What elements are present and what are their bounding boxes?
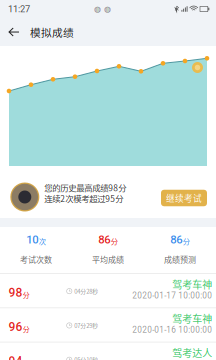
staticText: 04分28秒 — [74, 287, 98, 295]
staticText: 10 — [26, 233, 38, 246]
staticText: 次 — [39, 236, 46, 246]
staticText: 分 — [23, 290, 30, 300]
staticText: 驾考车神 — [172, 277, 212, 291]
staticText: 05分10秒 — [74, 355, 98, 360]
staticText: 07分29秒 — [74, 321, 98, 330]
button[interactable]: Back — [0, 18, 30, 46]
staticText: ◍ ◍ — [94, 4, 111, 14]
staticText: 86 — [170, 233, 182, 246]
button[interactable]: 继续考试 — [161, 190, 207, 206]
staticText: 2020-01-17 10:00:00 — [132, 291, 212, 300]
staticText: 98 — [8, 286, 22, 300]
staticText: 分 — [183, 236, 190, 246]
staticText: 平均成绩 — [92, 253, 124, 265]
staticText: 考试次数 — [20, 253, 52, 265]
staticText: 94 — [8, 354, 22, 360]
staticText: 继续考试 — [166, 192, 202, 204]
staticText: 96 — [8, 320, 22, 334]
staticText: 驾考达人 — [172, 345, 212, 360]
staticText: 模拟成绩 — [30, 24, 74, 40]
button[interactable]: 98 — [0, 273, 216, 307]
staticText: 成绩预测 — [164, 253, 196, 265]
staticText: 86 — [98, 233, 110, 246]
staticText: 您的历史最高成绩98分 — [44, 181, 126, 194]
staticText: 分 — [23, 324, 30, 334]
staticText: 驾考车神 — [172, 311, 212, 326]
staticText: 11:27 — [8, 3, 30, 14]
staticText: 分 — [111, 236, 118, 246]
staticText: 2020-01-16 10:00:00 — [132, 325, 212, 335]
button[interactable]: 96 — [0, 307, 216, 342]
staticText: 连续2次模考超过95分 — [44, 192, 123, 204]
button[interactable]: 94 — [0, 342, 216, 360]
